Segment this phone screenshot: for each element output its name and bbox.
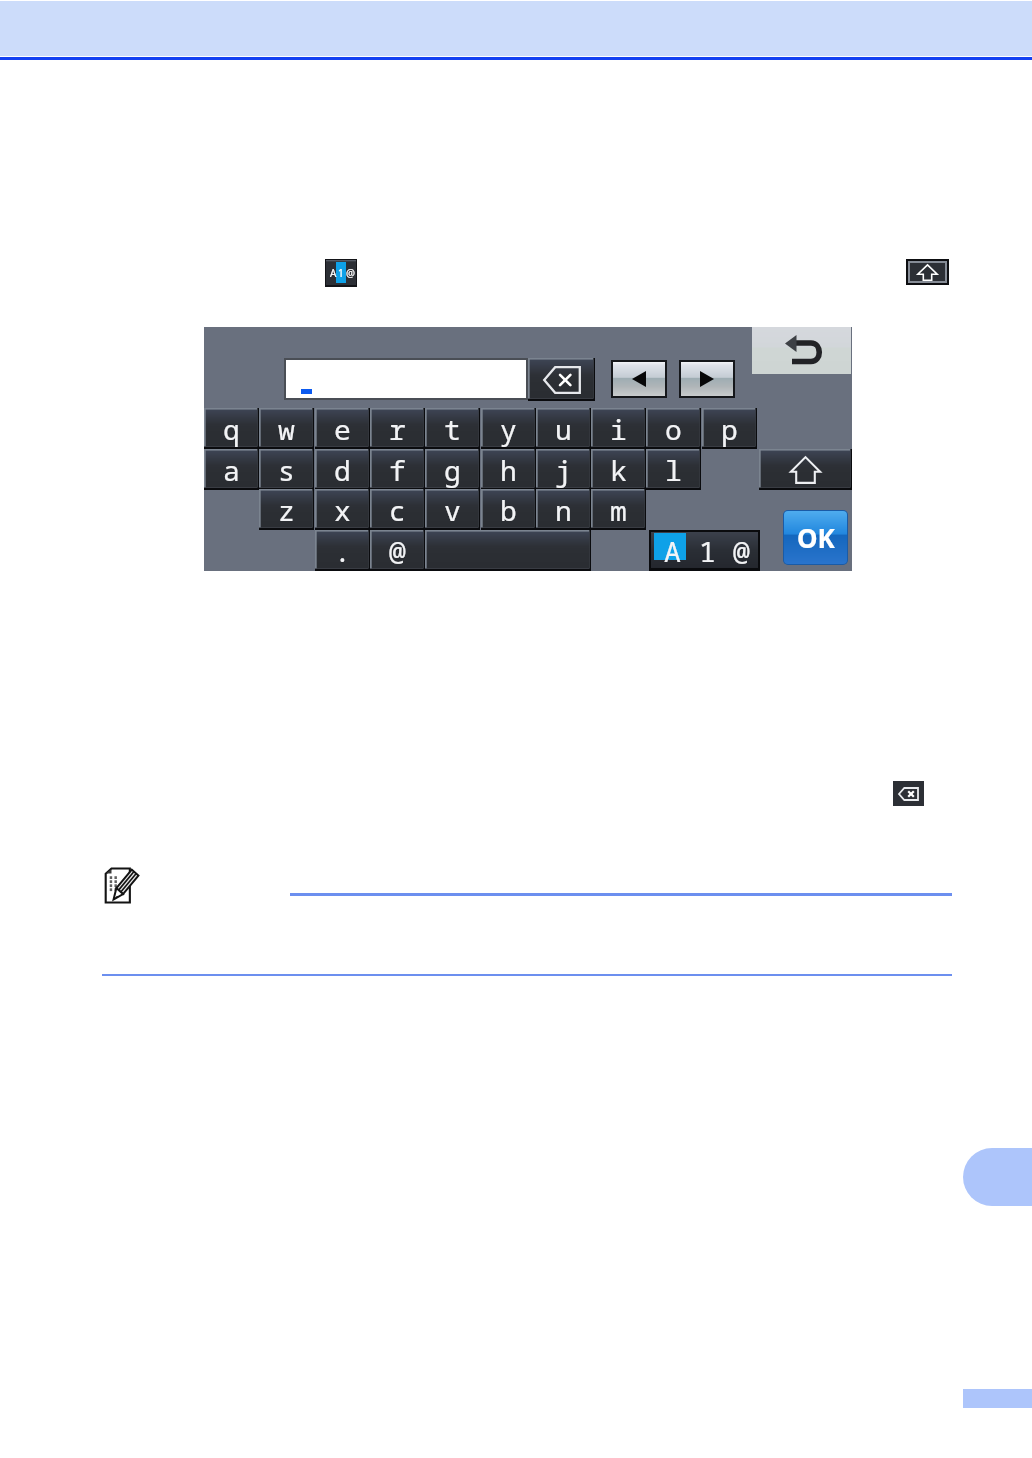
button[interactable]: f — [370, 449, 425, 490]
button[interactable]: q — [204, 408, 259, 449]
staticText: i — [610, 410, 627, 448]
button[interactable]: x — [315, 489, 370, 530]
button[interactable]: l — [646, 449, 701, 490]
staticText: u — [555, 410, 572, 448]
button[interactable]: p — [702, 408, 757, 449]
button[interactable]: @ — [370, 530, 425, 571]
button[interactable]: Switch character type — [651, 532, 758, 568]
button[interactable]: n — [536, 489, 591, 530]
button[interactable]: d — [315, 449, 370, 490]
staticText: A — [664, 532, 681, 566]
staticText: e — [334, 410, 351, 448]
staticText: n — [555, 491, 572, 529]
staticText: l — [665, 451, 682, 489]
button[interactable]: s — [259, 449, 314, 490]
staticText: t — [444, 410, 461, 448]
staticText: c — [389, 491, 406, 529]
button[interactable]: e — [315, 408, 370, 449]
button[interactable]: y — [481, 408, 536, 449]
staticText: j — [555, 451, 572, 489]
button[interactable]: c — [370, 489, 425, 530]
button[interactable]: w — [259, 408, 314, 449]
button[interactable]: Back — [752, 327, 851, 374]
staticText: b — [500, 491, 517, 529]
button[interactable]: Space — [425, 530, 591, 571]
button[interactable]: t — [425, 408, 480, 449]
staticText: OK — [797, 520, 835, 555]
staticText: @ — [346, 266, 355, 279]
button[interactable]: Backspace — [528, 358, 595, 401]
staticText: a — [223, 451, 240, 489]
button[interactable]: b — [481, 489, 536, 530]
button[interactable]: v — [425, 489, 480, 530]
button[interactable]: Move right — [681, 362, 733, 396]
button[interactable]: k — [591, 449, 646, 490]
button[interactable]: g — [425, 449, 480, 490]
button[interactable]: r — [370, 408, 425, 449]
staticText: z — [278, 491, 295, 529]
staticText: k — [610, 451, 627, 489]
button[interactable]: Move left — [613, 362, 665, 396]
staticText: d — [334, 451, 351, 489]
staticText: r — [389, 410, 406, 448]
button[interactable]: u — [536, 408, 591, 449]
staticText: x — [334, 491, 351, 529]
staticText: 1 — [338, 266, 344, 279]
button[interactable]: a — [204, 449, 259, 490]
button[interactable]: i — [591, 408, 646, 449]
staticText: v — [444, 491, 461, 529]
button[interactable]: Shift — [759, 449, 852, 490]
staticText: q — [223, 410, 240, 448]
staticText: y — [500, 410, 517, 448]
staticText: o — [665, 410, 682, 448]
staticText: m — [610, 491, 627, 529]
button[interactable]: m — [591, 489, 646, 530]
button[interactable]: z — [259, 489, 314, 530]
button[interactable]: o — [646, 408, 701, 449]
staticText: @ — [733, 532, 750, 566]
staticText: f — [389, 451, 406, 489]
staticText: . — [334, 532, 351, 570]
button[interactable]: j — [536, 449, 591, 490]
staticText: p — [721, 410, 738, 448]
staticText: s — [278, 451, 295, 489]
staticText: g — [444, 451, 461, 489]
staticText: A — [330, 266, 337, 279]
staticText: h — [500, 451, 517, 489]
staticText: @ — [389, 532, 406, 570]
staticText: 1 — [699, 532, 716, 566]
button[interactable]: h — [481, 449, 536, 490]
button[interactable]: OK — [784, 511, 847, 564]
button[interactable]: . — [315, 530, 370, 571]
staticText: w — [278, 410, 295, 448]
